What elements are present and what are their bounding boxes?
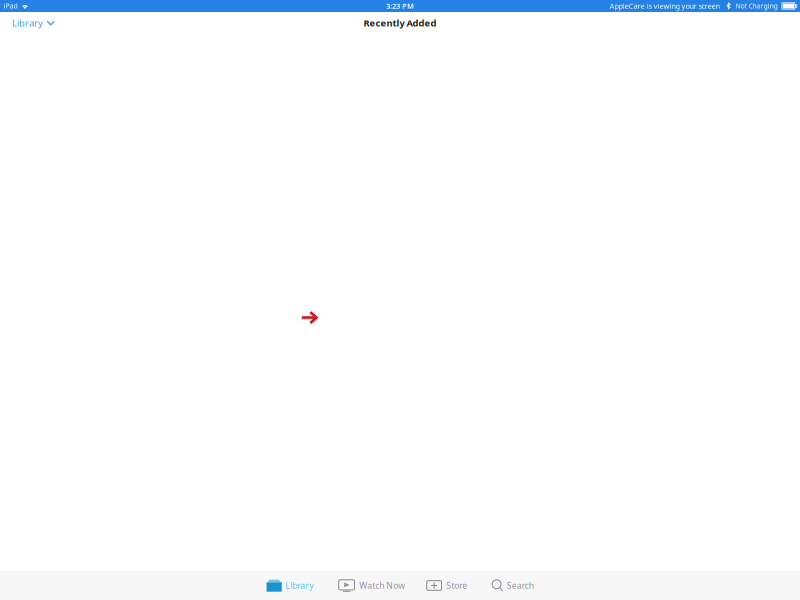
button[interactable]: Store	[420, 571, 473, 600]
staticText: Watch Now	[359, 580, 405, 591]
button[interactable]: Library	[0, 12, 67, 36]
staticText: Search	[507, 580, 534, 591]
staticText: AppleCare is viewing your screen	[609, 1, 719, 11]
button[interactable]: Search	[486, 571, 540, 600]
staticText: 3:23 PM	[386, 1, 414, 11]
staticText: Library	[285, 580, 313, 591]
staticText: Not Charging	[735, 1, 777, 11]
staticText: Recently Added	[363, 17, 436, 29]
staticText: Library	[12, 17, 43, 29]
staticText: Store	[446, 580, 467, 591]
button[interactable]: Watch Now	[332, 571, 411, 600]
button[interactable]: Library	[260, 571, 319, 600]
staticText: iPad	[3, 1, 17, 11]
